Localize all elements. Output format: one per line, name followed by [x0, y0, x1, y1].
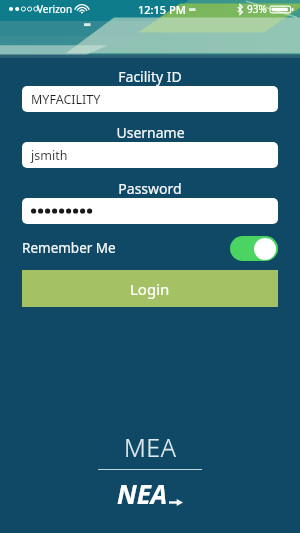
staticText: Login — [130, 279, 170, 299]
staticText: 12:15 PM — [138, 2, 186, 17]
staticText: 93% — [247, 2, 267, 16]
staticText: MEA — [124, 430, 177, 464]
button[interactable]: Login — [22, 270, 278, 307]
button[interactable]: Remember Me toggle, on — [230, 236, 278, 261]
staticText: Remember Me — [22, 239, 116, 257]
staticText: Verizon — [37, 2, 73, 16]
button[interactable] — [22, 198, 278, 224]
button[interactable]: MYFACILITY — [22, 86, 278, 112]
staticText: jsmith — [31, 147, 68, 164]
staticText: Facility ID — [118, 67, 182, 86]
button[interactable]: Remember Me — [22, 233, 278, 263]
staticText: NEA — [117, 476, 168, 511]
staticText: MYFACILITY — [31, 91, 101, 108]
button[interactable]: jsmith — [22, 142, 278, 168]
staticText: Username — [116, 123, 185, 142]
staticText: Password — [118, 179, 182, 198]
